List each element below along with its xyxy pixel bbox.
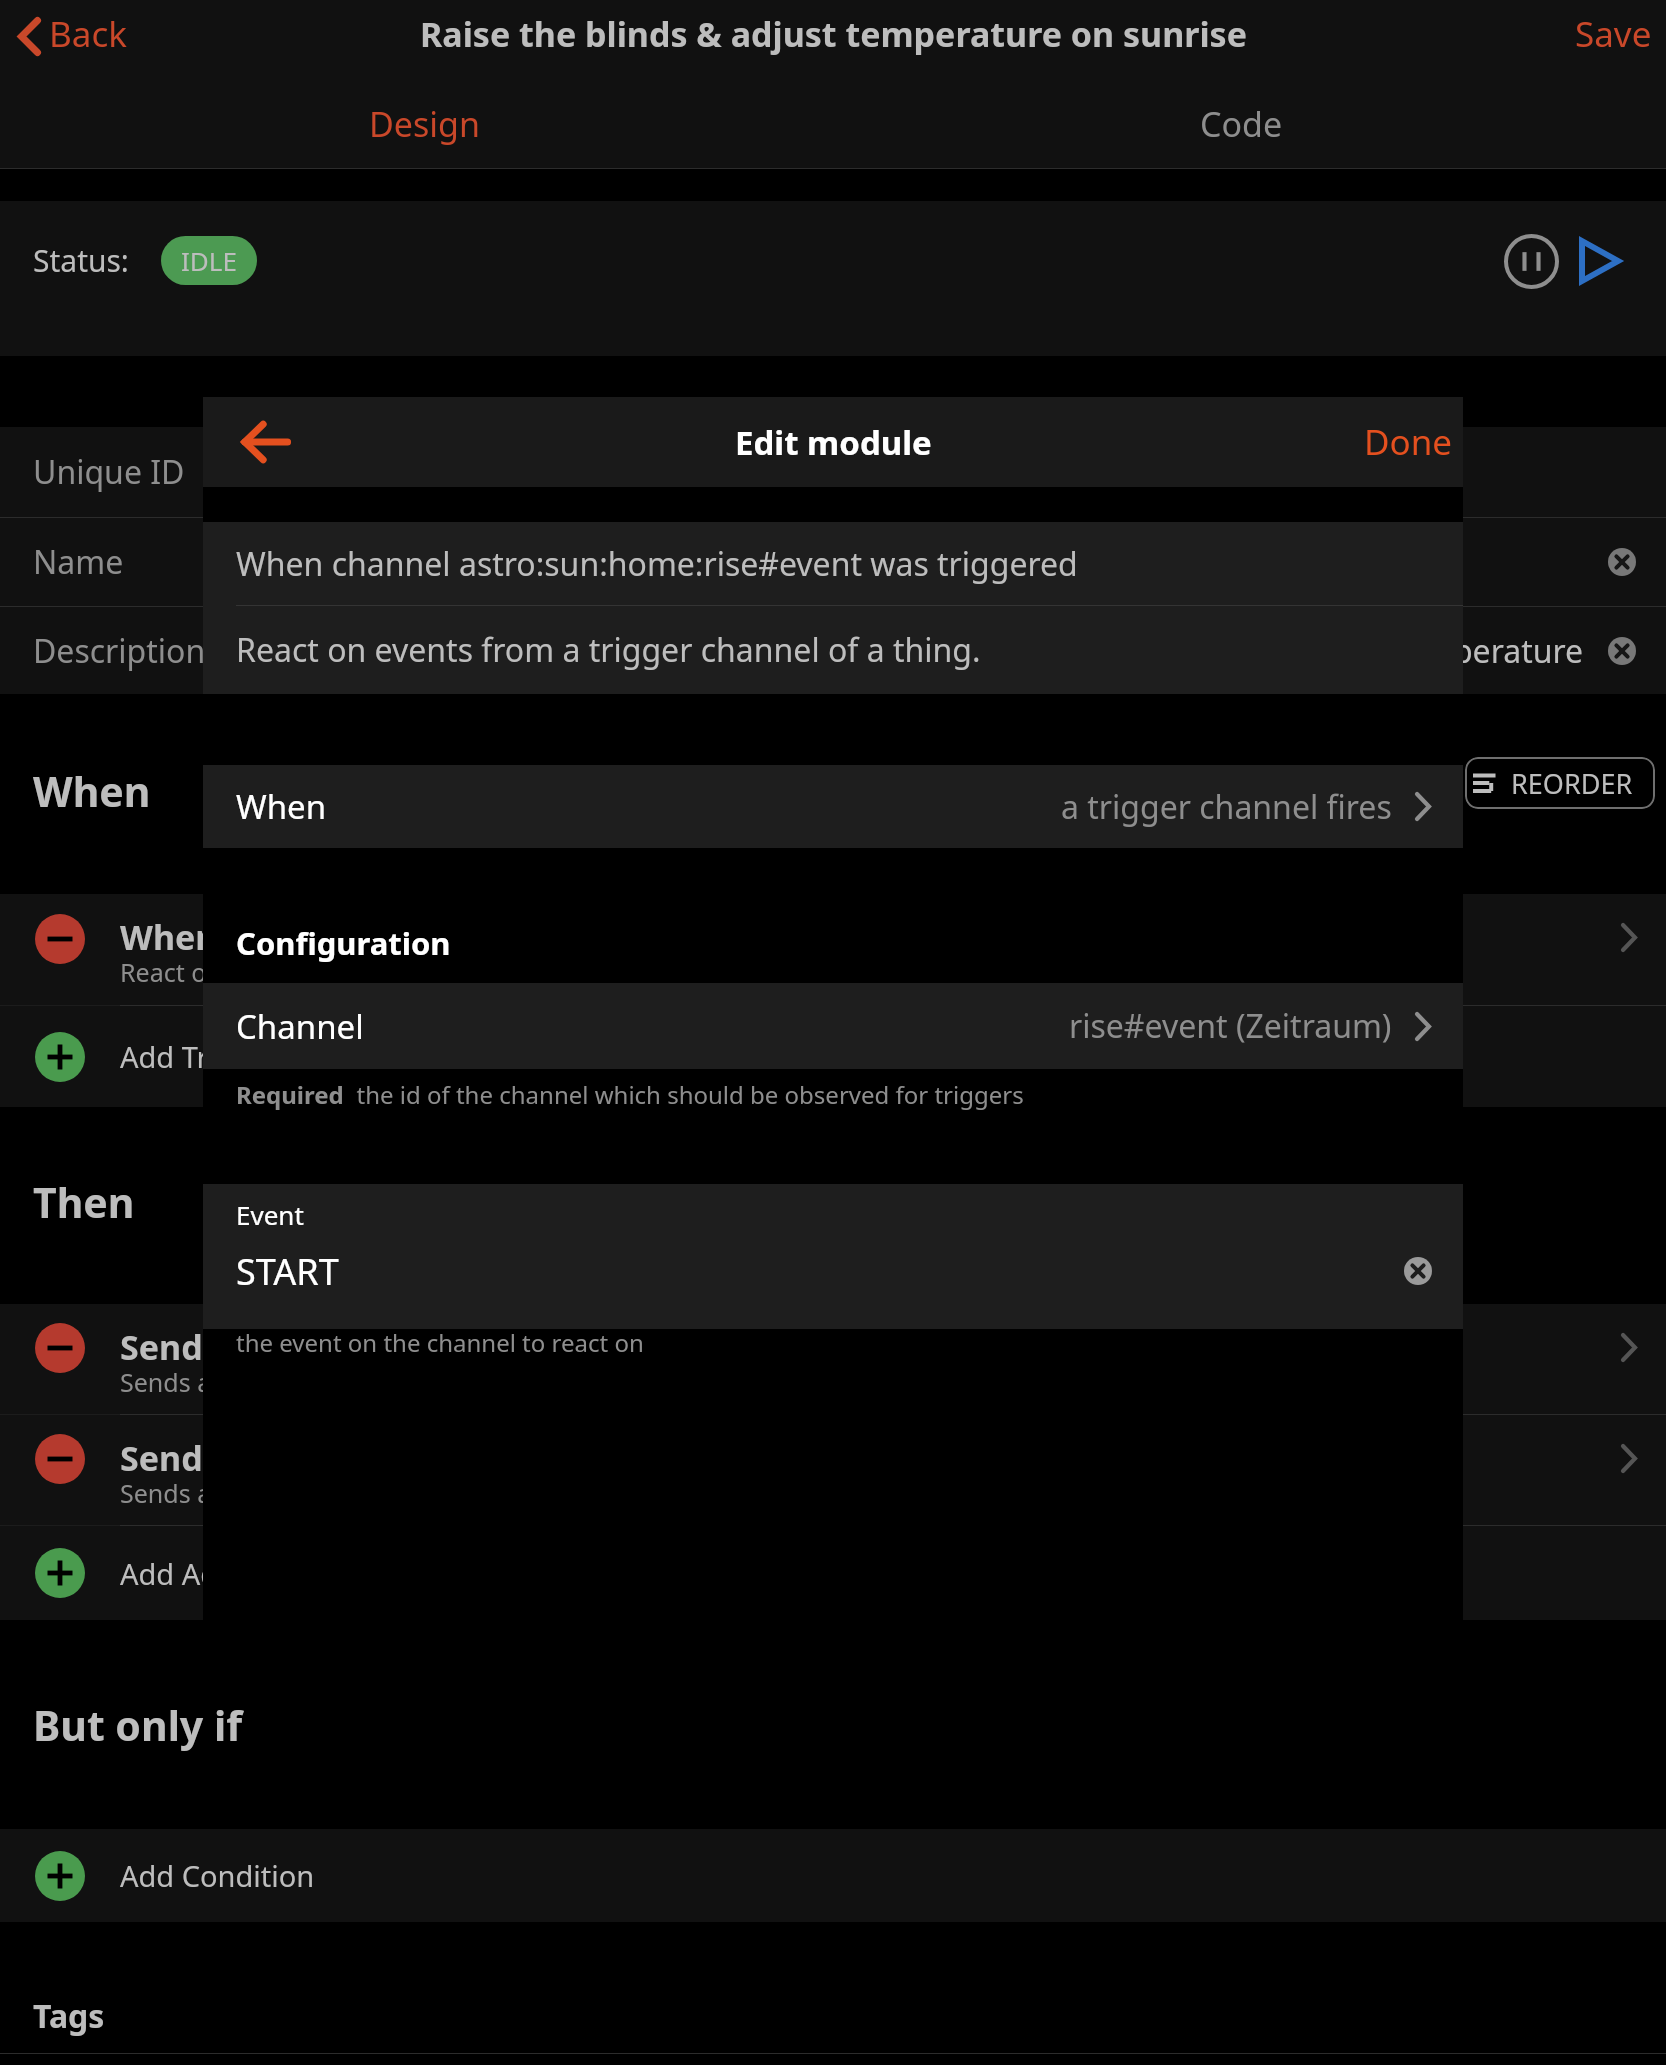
staticText: Then bbox=[33, 1174, 135, 1230]
staticText: Back bbox=[49, 10, 127, 58]
button[interactable]: Add bbox=[35, 1851, 85, 1901]
staticText: Save bbox=[1575, 10, 1652, 58]
staticText: When bbox=[236, 784, 327, 829]
staticText: When channel astro:sun:home:rise#event w… bbox=[120, 914, 1070, 960]
staticText: the event on the channel to react on bbox=[236, 1326, 644, 1359]
staticText: Unique ID bbox=[33, 450, 185, 494]
button[interactable]: Remove bbox=[35, 1415, 1637, 1525]
staticText: Sends a notification to all mobile devic… bbox=[120, 1476, 729, 1510]
button[interactable]: Add bbox=[35, 1526, 1642, 1620]
staticText: Raise the blinds & adjust temperature on… bbox=[420, 11, 1247, 57]
staticText: Tags bbox=[33, 1994, 105, 2038]
staticText: Add Condition bbox=[120, 1856, 315, 1895]
button[interactable]: Remove bbox=[35, 1434, 85, 1484]
staticText: Configuration bbox=[236, 922, 451, 964]
staticText: the id of the channel which should be ob… bbox=[344, 1078, 1024, 1111]
button[interactable]: Add bbox=[35, 1548, 85, 1598]
staticText: Add Trigger bbox=[120, 1037, 280, 1076]
staticText: Channel bbox=[236, 1004, 364, 1049]
button[interactable]: Save bbox=[1575, 0, 1652, 76]
button[interactable]: REORDER bbox=[1472, 757, 1633, 809]
staticText: IDLE bbox=[181, 243, 237, 278]
staticText: Sends a notification to all mobile devic… bbox=[120, 1365, 729, 1399]
staticText: When bbox=[33, 763, 151, 819]
button[interactable]: Unique ID bbox=[33, 427, 1642, 517]
button[interactable]: Add bbox=[35, 1829, 1642, 1922]
button[interactable]: Description bbox=[33, 607, 1642, 694]
button[interactable]: Name bbox=[33, 518, 1642, 606]
staticText: When channel astro:sun:home:rise#event w… bbox=[236, 542, 1078, 586]
staticText: React on events from a trigger channel o… bbox=[236, 628, 981, 672]
button[interactable]: Clear bbox=[1602, 542, 1642, 582]
staticText: Status: bbox=[33, 240, 129, 281]
staticText: React on events from a trigger channel o… bbox=[120, 955, 702, 989]
button[interactable]: Run bbox=[1577, 238, 1623, 284]
staticText: Design bbox=[369, 101, 480, 147]
staticText: REORDER bbox=[1511, 765, 1633, 802]
button[interactable]: Design bbox=[16, 82, 833, 166]
staticText: Required bbox=[236, 1078, 344, 1111]
staticText: Name bbox=[33, 540, 124, 584]
staticText: Send a notification to all devices bbox=[120, 1324, 668, 1370]
staticText: Code bbox=[1200, 101, 1283, 147]
button[interactable]: Remove bbox=[35, 914, 85, 964]
staticText: a trigger channel fires bbox=[1061, 785, 1392, 829]
button[interactable]: Channel bbox=[236, 983, 1431, 1069]
button[interactable]: Remove bbox=[35, 894, 1637, 1005]
staticText: Send a notification to all devices bbox=[120, 1435, 668, 1481]
button[interactable]: Done bbox=[1364, 397, 1453, 487]
staticText: Description bbox=[33, 629, 206, 673]
staticText: But only if bbox=[33, 1697, 243, 1753]
button[interactable]: Back bbox=[16, 0, 127, 76]
button[interactable]: Clear bbox=[1398, 1251, 1438, 1291]
button[interactable]: IDLE bbox=[161, 236, 257, 285]
button[interactable]: Back bbox=[235, 412, 295, 472]
staticText: Event bbox=[236, 1197, 304, 1232]
staticText: Done bbox=[1364, 418, 1453, 466]
staticText: Raise the blinds & adjust temperature bbox=[1016, 629, 1584, 673]
button[interactable]: When bbox=[236, 765, 1431, 848]
button[interactable]: Remove bbox=[35, 1304, 1637, 1414]
button[interactable]: Remove bbox=[35, 1323, 85, 1373]
button[interactable]: Clear bbox=[1602, 631, 1642, 671]
staticText: Add Action bbox=[120, 1554, 268, 1593]
staticText: Edit module bbox=[735, 420, 932, 465]
button[interactable]: Add bbox=[35, 1032, 85, 1082]
button[interactable]: Code bbox=[833, 82, 1650, 166]
staticText: rise#event (Zeitraum) bbox=[1069, 1004, 1392, 1048]
button[interactable]: Add bbox=[35, 1006, 1642, 1107]
staticText: START bbox=[236, 1247, 339, 1296]
button[interactable]: Pause bbox=[1503, 233, 1559, 289]
